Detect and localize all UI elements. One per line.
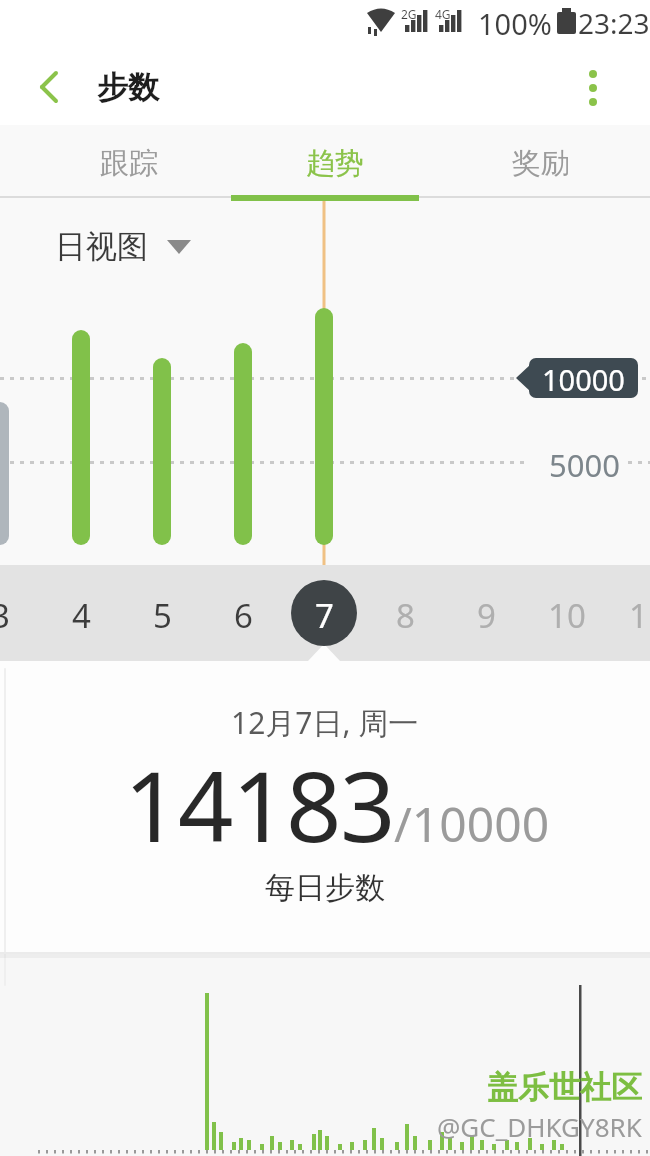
staticText: 8 — [396, 593, 415, 633]
button[interactable] — [45, 222, 205, 266]
button[interactable]: 11 — [618, 593, 650, 633]
staticText: 9 — [477, 593, 496, 633]
button[interactable]: 3 — [0, 593, 30, 633]
staticText: 盖乐世社区 — [487, 1068, 642, 1106]
staticText: 12月7日, 周一 — [231, 702, 419, 740]
staticText: 5000 — [549, 444, 620, 480]
staticText: /10000 — [394, 791, 550, 856]
button[interactable]: 8 — [375, 593, 435, 633]
staticText: 23:23 — [578, 4, 650, 36]
button[interactable]: 趋势 — [232, 130, 438, 196]
staticText: 14183 — [124, 738, 394, 870]
staticText: 4G — [435, 6, 451, 20]
button[interactable]: 10 — [537, 593, 597, 633]
button[interactable]: 9 — [456, 593, 516, 633]
button[interactable] — [571, 63, 615, 111]
staticText: 日视图 — [55, 227, 148, 266]
button[interactable]: 奖励 — [438, 130, 644, 196]
button[interactable]: 跟踪 — [26, 130, 232, 196]
staticText: 10000 — [542, 360, 625, 397]
button[interactable]: 7 — [294, 593, 354, 633]
staticText: 100% — [478, 4, 552, 36]
staticText: 6 — [234, 593, 253, 633]
staticText: 3 — [0, 593, 10, 633]
staticText: 7 — [315, 593, 334, 633]
staticText: 跟踪 — [100, 145, 158, 182]
staticText: 步数 — [97, 68, 159, 107]
staticText: 2G — [401, 6, 417, 20]
staticText: 5 — [153, 593, 172, 633]
staticText: 11 — [629, 593, 650, 633]
button[interactable]: 4 — [51, 593, 111, 633]
button[interactable]: 6 — [213, 593, 273, 633]
button[interactable]: 5 — [132, 593, 192, 633]
staticText: 趋势 — [306, 145, 364, 182]
staticText: @GC_DHKGY8RK — [437, 1109, 642, 1144]
staticText: 10 — [548, 593, 586, 633]
button[interactable] — [30, 65, 74, 109]
staticText: 奖励 — [512, 145, 570, 182]
staticText: 每日步数 — [265, 869, 385, 907]
staticText: 4 — [72, 593, 91, 633]
